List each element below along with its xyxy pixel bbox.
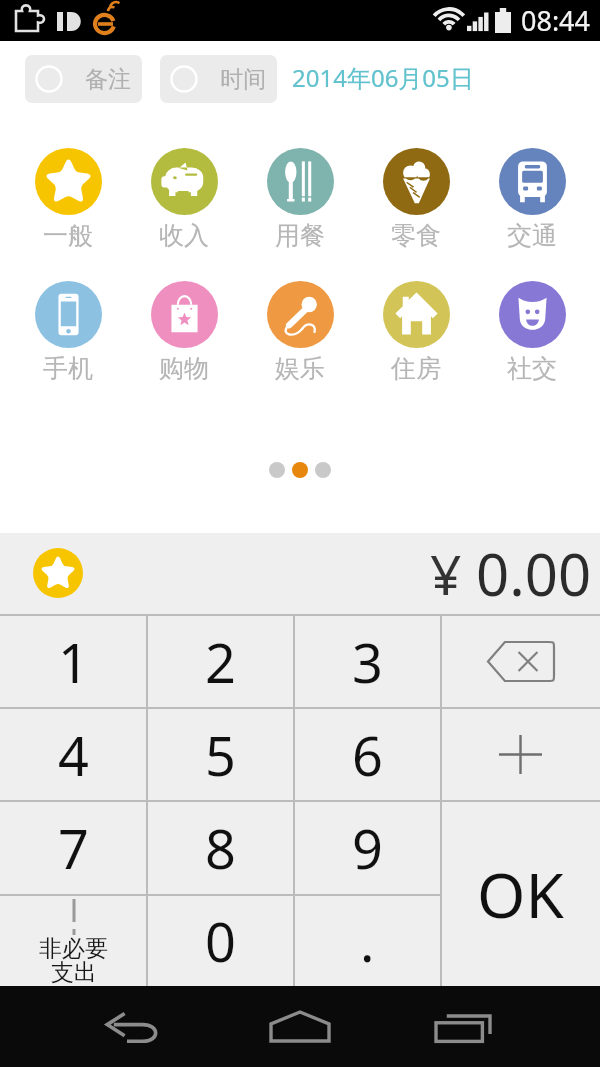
staticText: 交通 [507, 220, 557, 251]
staticText: 支出 [51, 958, 97, 987]
button[interactable]: 5 [147, 708, 294, 801]
button[interactable]: Back [88, 986, 178, 1067]
staticText: 5 [205, 718, 236, 792]
button[interactable]: 一般 [13, 148, 123, 251]
button[interactable]: 6 [294, 708, 441, 801]
button[interactable]: 时间 [160, 55, 277, 103]
staticText: ¥ [430, 536, 462, 611]
button[interactable]: 娱乐 [245, 281, 355, 384]
button[interactable]: Delete [441, 615, 600, 708]
button[interactable]: 2 [147, 615, 294, 708]
button[interactable]: 零食 [361, 148, 471, 251]
staticText: 9 [352, 811, 383, 885]
button[interactable]: 社交 [477, 281, 587, 384]
button[interactable]: 1 [0, 615, 147, 708]
staticText: 住房 [391, 353, 441, 384]
staticText: 手机 [43, 353, 93, 384]
staticText: 3 [352, 625, 383, 699]
staticText: 08:44 [521, 2, 591, 39]
staticText: OK [477, 852, 564, 936]
staticText: 2 [205, 625, 236, 699]
button[interactable]: 7 [0, 801, 147, 895]
button[interactable]: Home [255, 986, 345, 1067]
staticText: 社交 [507, 353, 557, 384]
staticText: 时间 [220, 65, 266, 94]
button[interactable]: 备注 [25, 55, 142, 103]
staticText: 4 [58, 718, 89, 792]
staticText: 娱乐 [275, 353, 325, 384]
staticText: 7 [58, 811, 89, 885]
staticText: 6 [352, 718, 383, 792]
staticText: 8 [205, 811, 236, 885]
button[interactable]: 购物 [129, 281, 239, 384]
button[interactable]: 3 [294, 615, 441, 708]
button[interactable]: 0 [147, 895, 294, 986]
staticText: 1 [58, 625, 89, 699]
staticText: 一般 [43, 220, 93, 251]
button[interactable]: 非必要 [0, 895, 147, 986]
staticText: 用餐 [275, 220, 325, 251]
staticText: 收入 [159, 220, 209, 251]
staticText: 0 [205, 904, 236, 978]
button[interactable]: 9 [294, 801, 441, 895]
button[interactable]: 4 [0, 708, 147, 801]
staticText: 零食 [391, 220, 441, 251]
button[interactable]: 交通 [477, 148, 587, 251]
staticText: 0.00 [476, 534, 592, 613]
button[interactable]: 住房 [361, 281, 471, 384]
button[interactable]: Plus [441, 708, 600, 801]
staticText: 2014年06月05日 [292, 61, 474, 94]
button[interactable]: 收入 [129, 148, 239, 251]
button[interactable]: Recent apps [418, 986, 508, 1067]
staticText: . [360, 904, 375, 978]
staticText: 非必要 [39, 934, 108, 963]
button[interactable]: 手机 [13, 281, 123, 384]
button[interactable]: OK [441, 801, 600, 986]
button[interactable]: 8 [147, 801, 294, 895]
button[interactable]: . [294, 895, 441, 986]
button[interactable]: 用餐 [245, 148, 355, 251]
staticText: 购物 [159, 353, 209, 384]
staticText: 备注 [85, 65, 131, 94]
